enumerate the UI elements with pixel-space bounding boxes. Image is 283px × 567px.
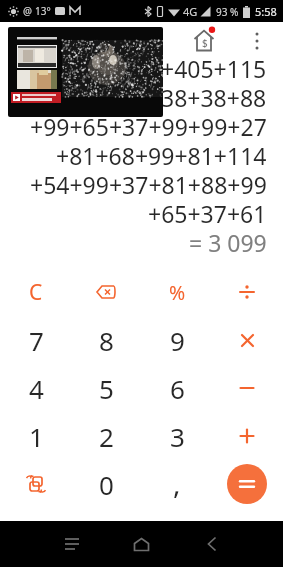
staticText: 1 [29, 419, 44, 454]
button[interactable] [51, 524, 91, 564]
staticText: 38+38+88 [161, 82, 267, 111]
staticText: 4G [183, 4, 198, 19]
button[interactable]: 3 [142, 412, 212, 460]
button[interactable]: 8 [71, 316, 141, 364]
staticText: @ [23, 4, 32, 18]
button[interactable]: 7 [1, 316, 71, 364]
button[interactable]: % [142, 268, 212, 316]
staticText: +99+65+37+99+99+27 [30, 111, 267, 140]
button[interactable]: 5 [71, 364, 141, 412]
staticText: 8 [99, 323, 114, 358]
button[interactable] [212, 316, 282, 364]
button[interactable] [212, 460, 282, 508]
staticText: 3 [170, 419, 185, 454]
button[interactable]: 1 [1, 412, 71, 460]
button[interactable] [71, 268, 141, 316]
staticText: 5:58 [255, 4, 277, 19]
button[interactable] [8, 27, 163, 117]
staticText: 9 [170, 323, 185, 358]
staticText: , [173, 464, 181, 502]
staticText: C [29, 278, 43, 307]
button[interactable]: 0 [71, 460, 141, 508]
button[interactable]: C [1, 268, 71, 316]
button[interactable] [212, 268, 282, 316]
staticText: $ [202, 36, 208, 50]
staticText: +405+115 [161, 53, 267, 82]
button[interactable]: , [142, 460, 212, 508]
staticText: 0 [99, 467, 114, 502]
button[interactable] [192, 524, 232, 564]
staticText: +65+37+61 [148, 198, 267, 227]
button[interactable]: $ [191, 26, 218, 52]
button[interactable]: 2 [71, 412, 141, 460]
staticText: 2 [99, 419, 114, 454]
button[interactable]: 6 [142, 364, 212, 412]
staticText: % [169, 279, 186, 306]
staticText: = 3 099 [189, 227, 267, 256]
staticText: +81+68+99+81+114 [56, 140, 267, 169]
button[interactable]: 4 [1, 364, 71, 412]
button[interactable] [212, 364, 282, 412]
button[interactable]: 9 [142, 316, 212, 364]
staticText: 6 [170, 371, 185, 406]
button[interactable] [121, 524, 161, 564]
staticText: 93 % [216, 5, 239, 19]
button[interactable] [212, 412, 282, 460]
button[interactable] [1, 460, 71, 508]
staticText: 5 [99, 371, 114, 406]
staticText: +54+99+37+81+88+99 [30, 169, 267, 198]
staticText: 13° [35, 4, 51, 18]
button[interactable] [248, 30, 266, 52]
staticText: 7 [29, 323, 44, 358]
staticText: 4 [29, 371, 44, 406]
